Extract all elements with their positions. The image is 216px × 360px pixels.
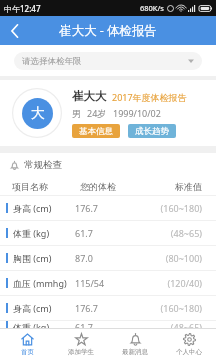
button[interactable]: 最新消息 bbox=[108, 329, 162, 360]
staticText: 61.7 bbox=[75, 227, 131, 239]
staticText: (48~65) bbox=[131, 321, 202, 328]
staticText: 体重 (kg) bbox=[13, 321, 75, 328]
staticText: 请选择体检年限 bbox=[22, 56, 188, 67]
button[interactable]: 身高 (cm) bbox=[0, 196, 216, 220]
staticText: 项目名称 bbox=[12, 181, 80, 192]
staticText: (160~180) bbox=[131, 202, 202, 214]
staticText: 61.7 bbox=[75, 321, 131, 328]
staticText: 体重 (kg) bbox=[13, 227, 75, 239]
staticText: (80~100) bbox=[131, 252, 202, 264]
staticText: 680K/s bbox=[140, 3, 164, 13]
staticText: 87.0 bbox=[75, 252, 131, 264]
staticText: 个人中心 bbox=[176, 348, 202, 356]
staticText: 首页 bbox=[21, 348, 34, 356]
staticText: 添加学生 bbox=[68, 348, 94, 356]
staticText: 您的体检 bbox=[80, 181, 136, 192]
staticText: 男 bbox=[72, 108, 81, 119]
staticText: 成长趋势 bbox=[135, 126, 169, 137]
button[interactable]: 胸围 (cm) bbox=[0, 246, 216, 270]
button[interactable]: 体重 (kg) bbox=[0, 321, 216, 328]
staticText: 崔大大 bbox=[72, 89, 107, 103]
button[interactable]: 请选择体检年限 bbox=[14, 52, 202, 70]
staticText: (160~180) bbox=[131, 302, 202, 314]
staticText: 1999/10/02 bbox=[113, 107, 161, 119]
staticText: 115/54 bbox=[75, 277, 131, 289]
button[interactable]: 身高 (cm) bbox=[0, 296, 216, 320]
button[interactable]: 基本信息 bbox=[72, 124, 120, 138]
staticText: 崔大大 - 体检报告 bbox=[59, 22, 158, 39]
staticText: (48~65) bbox=[131, 227, 202, 239]
staticText: 血压 (mmhg) bbox=[13, 277, 75, 289]
button[interactable]: 首页 bbox=[0, 329, 54, 360]
button[interactable]: 添加学生 bbox=[54, 329, 108, 360]
staticText: 常规检查 bbox=[24, 159, 62, 171]
staticText: 大 bbox=[31, 105, 45, 123]
staticText: 身高 (cm) bbox=[13, 302, 75, 314]
staticText: 基本信息 bbox=[79, 126, 113, 137]
staticText: 中午12:47 bbox=[4, 3, 41, 14]
staticText: 标准值 bbox=[136, 181, 202, 192]
staticText: 2017年度体检报告 bbox=[112, 91, 187, 103]
button[interactable]: 成长趋势 bbox=[128, 124, 176, 138]
button[interactable]: 体重 (kg) bbox=[0, 221, 216, 245]
staticText: 176.7 bbox=[75, 202, 131, 214]
button[interactable]: Back bbox=[0, 16, 30, 45]
staticText: 最新消息 bbox=[122, 348, 148, 356]
button[interactable]: 个人中心 bbox=[162, 329, 216, 360]
staticText: 胸围 (cm) bbox=[13, 252, 75, 264]
staticText: (120/40) bbox=[131, 277, 202, 289]
staticText: 176.7 bbox=[75, 302, 131, 314]
button[interactable]: 血压 (mmhg) bbox=[0, 271, 216, 295]
staticText: 身高 (cm) bbox=[13, 202, 75, 214]
staticText: 24岁 bbox=[87, 107, 107, 119]
